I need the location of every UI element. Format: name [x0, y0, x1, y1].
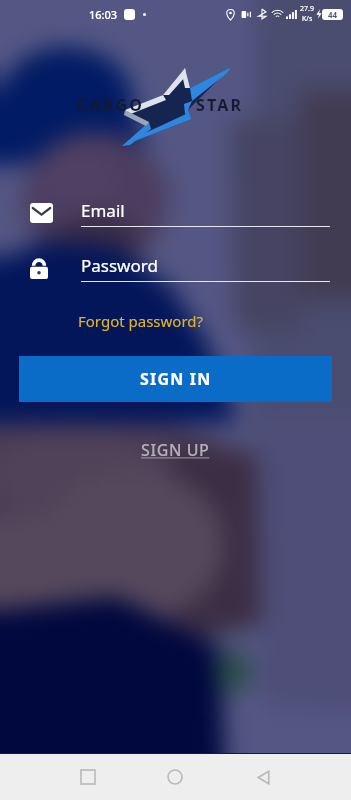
staticText: STAR [196, 94, 244, 116]
button[interactable]: SIGN IN [19, 356, 332, 402]
staticText: 44 [328, 9, 338, 20]
other: Password [30, 258, 48, 279]
button[interactable]: Home [153, 755, 197, 799]
button[interactable]: Recents [66, 755, 110, 799]
button[interactable]: SIGN UP [141, 439, 210, 461]
staticText: 27.9 [300, 4, 314, 14]
staticText: 16:03 [89, 7, 118, 22]
staticText: Email [81, 199, 125, 222]
button[interactable]: Back [241, 755, 285, 799]
button[interactable]: Forgot password? [78, 311, 204, 331]
staticText: Forgot password? [78, 311, 204, 331]
other: Email [30, 203, 53, 223]
staticText: Password [81, 254, 158, 277]
staticText: SIGN UP [141, 439, 210, 461]
staticText: K/s [302, 14, 313, 24]
staticText: SIGN IN [140, 368, 212, 390]
staticText: CARGO [77, 94, 145, 116]
